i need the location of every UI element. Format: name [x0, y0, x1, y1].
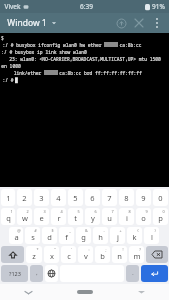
staticText: _	[69, 228, 71, 233]
staticText: ?123	[9, 270, 21, 277]
button[interactable]: 2	[17, 189, 32, 206]
staticText: 3	[39, 193, 44, 203]
button[interactable]: 0	[153, 189, 168, 206]
staticText: :/ # busybox ip link show wlan0	[1, 49, 87, 55]
button[interactable]: Recent apps	[113, 284, 169, 300]
staticText: (	[137, 228, 139, 233]
staticText: .	[132, 270, 134, 277]
staticText: 7	[111, 209, 114, 214]
staticText: o	[141, 213, 146, 223]
staticText: '	[71, 247, 72, 252]
staticText: 0	[158, 193, 163, 203]
button[interactable]: 7	[102, 208, 117, 225]
button[interactable]: 1	[1, 189, 15, 206]
staticText: 0	[162, 209, 165, 214]
button[interactable]: Toggle soft keyboard	[112, 14, 130, 32]
button[interactable]: ?123	[1, 265, 28, 282]
button[interactable]: *	[26, 246, 42, 263]
button[interactable]: Home	[57, 284, 113, 300]
button[interactable]: 3	[34, 189, 49, 206]
staticText: c	[67, 251, 71, 261]
button[interactable]: 7	[102, 189, 117, 206]
button[interactable]: "	[44, 246, 59, 263]
button[interactable]: 5	[68, 208, 83, 225]
staticText: w	[22, 213, 28, 223]
button[interactable]: 2	[17, 208, 32, 225]
button[interactable]: Back	[0, 284, 57, 300]
button[interactable]: 5	[68, 189, 83, 206]
button[interactable]: Enter	[141, 265, 168, 282]
staticText: 5	[73, 193, 78, 203]
staticText: d	[47, 232, 52, 242]
staticText: s	[31, 232, 35, 242]
button[interactable]: Shift	[1, 246, 24, 263]
staticText: "	[54, 247, 56, 252]
staticText: u	[107, 213, 112, 223]
staticText: 8	[124, 193, 129, 203]
staticText: 5	[77, 209, 80, 214]
staticText: +	[119, 228, 122, 233]
button[interactable]: 1	[1, 208, 15, 225]
staticText: a	[14, 232, 19, 242]
staticText: █	[15, 77, 18, 83]
staticText: p	[158, 213, 163, 223]
staticText: l	[151, 232, 153, 242]
staticText: en 1000	[1, 63, 21, 69]
button[interactable]: ,	[30, 265, 43, 282]
button[interactable]: Close window	[130, 14, 148, 32]
staticText: &	[85, 228, 88, 233]
staticText: #	[34, 228, 37, 233]
button[interactable]: @	[9, 227, 23, 244]
staticText: -	[103, 228, 105, 233]
staticText: b	[100, 251, 105, 261]
button[interactable]: Window 1	[0, 14, 61, 32]
staticText: y	[91, 213, 95, 223]
button[interactable]: 3	[34, 208, 49, 225]
button[interactable]: 6	[85, 189, 100, 206]
staticText: r	[57, 213, 61, 223]
staticText: 6	[94, 209, 97, 214]
staticText: 6	[90, 193, 95, 203]
button[interactable]: 4	[51, 189, 66, 206]
staticText: 3	[43, 209, 46, 214]
button[interactable]: 8	[119, 189, 134, 206]
button[interactable]: .	[126, 265, 139, 282]
button[interactable]: '	[61, 246, 76, 263]
staticText: ?	[139, 247, 141, 252]
button[interactable]: More options	[148, 14, 166, 32]
button[interactable]: 4	[51, 208, 66, 225]
staticText: t	[74, 213, 77, 223]
staticText: e	[39, 213, 44, 223]
button[interactable]: -	[93, 227, 108, 244]
button[interactable]: ;	[95, 246, 110, 263]
button[interactable]: 9	[136, 208, 151, 225]
button[interactable]: :	[78, 246, 93, 263]
button[interactable]: (	[127, 227, 142, 244]
button[interactable]: &	[76, 227, 91, 244]
staticText: ,	[36, 270, 38, 277]
button[interactable]: 9	[136, 189, 151, 206]
button[interactable]: +	[110, 227, 125, 244]
staticText: $	[1, 35, 4, 41]
button[interactable]: Backspace	[146, 246, 168, 263]
staticText: ca:8b:cc	[119, 42, 142, 48]
staticText: q	[6, 213, 11, 223]
button[interactable]: 0	[153, 208, 168, 225]
button[interactable]: ?	[129, 246, 144, 263]
staticText: 1	[6, 193, 11, 203]
staticText: ;	[105, 247, 107, 252]
button[interactable]: Change language	[45, 265, 58, 282]
staticText: 2	[26, 209, 29, 214]
staticText: n	[117, 251, 122, 261]
staticText: ca:8b:cc brd ff:ff:ff:ff:ff:ff	[59, 70, 142, 76]
staticText: h	[98, 232, 103, 242]
button[interactable]: _	[59, 227, 74, 244]
button[interactable]: 6	[85, 208, 100, 225]
button[interactable]: #	[25, 227, 40, 244]
button[interactable]: !	[112, 246, 127, 263]
staticText: 91%	[152, 2, 165, 11]
button[interactable]: $	[42, 227, 57, 244]
button[interactable]: )	[144, 227, 159, 244]
button[interactable]: 8	[119, 208, 134, 225]
